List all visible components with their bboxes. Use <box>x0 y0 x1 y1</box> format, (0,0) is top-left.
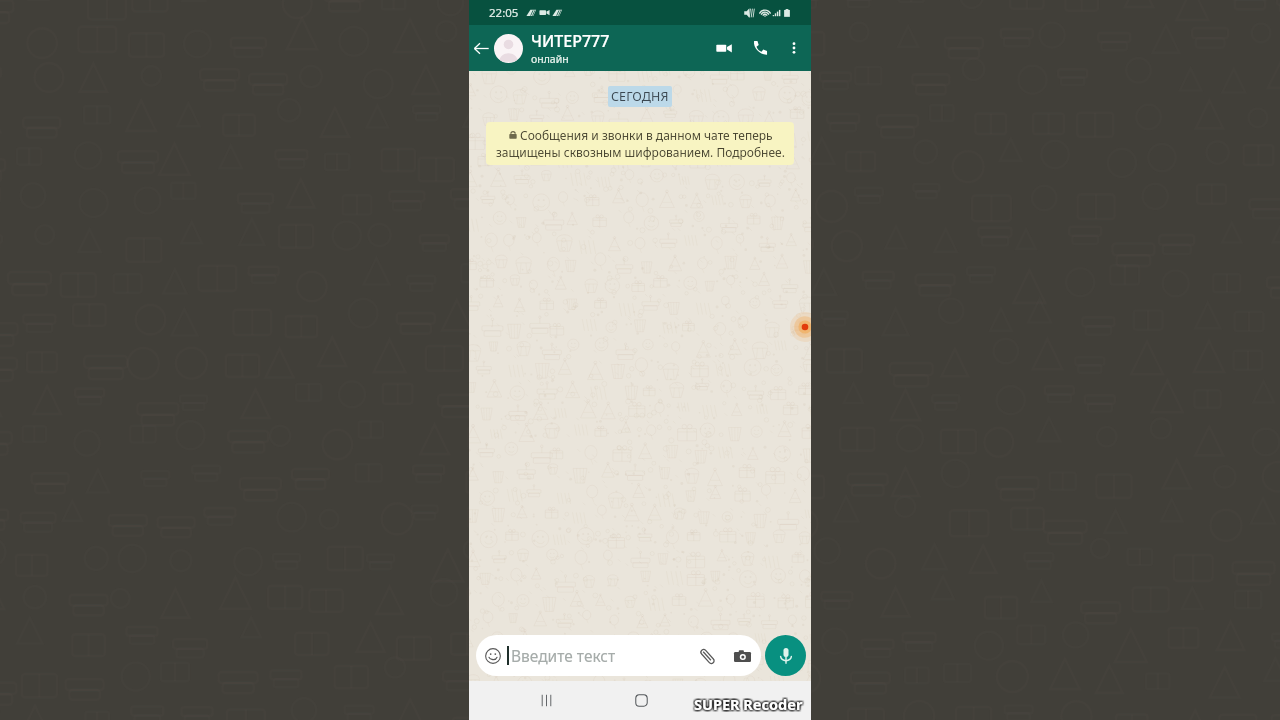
button[interactable]: СЕГОДНЯ <box>608 86 672 107</box>
staticText: защищены сквозным шифрованием. Подробнее… <box>496 144 785 160</box>
staticText: 22:05 <box>489 5 519 21</box>
staticText: SUPER Recoder <box>694 692 803 712</box>
button[interactable]: Back <box>716 681 756 720</box>
button[interactable]: Call <box>743 31 777 65</box>
staticText: онлайн <box>531 52 569 66</box>
staticText: SUPER Recoder <box>693 694 802 714</box>
staticText: SUPER Recoder <box>692 693 801 713</box>
button[interactable]: Profile photo <box>494 34 523 63</box>
button[interactable]: More options <box>779 33 809 63</box>
staticText: SUPER Recoder <box>693 692 802 712</box>
staticText: SUPER Recoder <box>696 696 805 716</box>
button[interactable]: Record voice message <box>765 635 806 676</box>
staticText: SUPER Recoder <box>695 693 804 713</box>
staticText: SUPER Recoder <box>696 693 805 713</box>
button[interactable]: Сообщения и звонки в данном чате теперь <box>486 122 794 165</box>
staticText: SUPER Recoder <box>695 696 804 716</box>
staticText: SUPER Recoder <box>694 695 803 715</box>
button[interactable]: Home <box>621 681 661 720</box>
button[interactable]: Attach file <box>697 646 717 666</box>
staticText: SUPER Recoder <box>695 695 804 715</box>
staticText: SUPER Recoder <box>692 694 801 714</box>
staticText: SUPER Recoder <box>695 692 804 712</box>
staticText: SUPER Recoder <box>693 696 802 716</box>
staticText: SUPER Recoder <box>694 693 803 713</box>
button[interactable]: Back <box>469 25 494 71</box>
staticText: SUPER Recoder <box>694 696 803 716</box>
staticText: SUPER Recoder <box>692 695 801 715</box>
staticText: SUPER Recoder <box>692 692 801 712</box>
button[interactable]: Введите текст <box>476 635 761 676</box>
staticText: ЧИТЕР777 <box>531 30 610 52</box>
staticText: SUPER Recoder <box>696 692 805 712</box>
staticText: Введите текст <box>511 645 616 666</box>
button[interactable]: Camera <box>732 646 752 666</box>
staticText: SUPER Recoder <box>696 694 805 714</box>
staticText: SUPER Recoder <box>693 695 802 715</box>
button[interactable]: ЧИТЕР777 <box>531 25 707 71</box>
staticText: SUPER Recoder <box>693 693 802 713</box>
staticText: СЕГОДНЯ <box>611 88 669 105</box>
staticText: SUPER Recoder <box>692 696 801 716</box>
staticText: SUPER Recoder <box>694 694 803 714</box>
staticText: SUPER Recoder <box>695 694 804 714</box>
staticText: SUPER Recoder <box>696 695 805 715</box>
button[interactable]: Video call <box>707 31 741 65</box>
staticText: Сообщения и звонки в данном чате теперь <box>520 127 773 143</box>
button[interactable]: Recent apps <box>526 681 566 720</box>
